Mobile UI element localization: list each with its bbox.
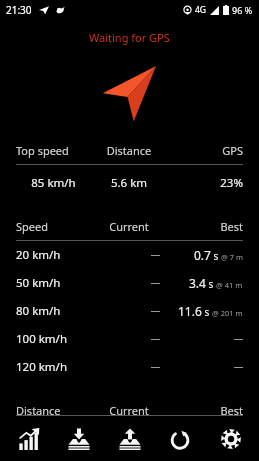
staticText: Top speed	[16, 143, 91, 158]
button[interactable]: Import	[57, 417, 101, 461]
staticText: GPS	[167, 143, 243, 158]
staticText: Current	[91, 219, 167, 234]
staticText: @ 41 m	[214, 280, 243, 290]
staticText: s	[202, 305, 210, 319]
staticText: Best	[167, 403, 243, 418]
staticText: 85 km/h	[16, 175, 91, 191]
staticText: 5.6 km	[91, 175, 167, 191]
staticText: @ 7 m	[219, 252, 243, 262]
staticText: 4G	[195, 4, 207, 16]
staticText: 21:30	[6, 3, 32, 17]
staticText: 100 km/h	[16, 331, 88, 347]
staticText: Distance	[91, 143, 167, 158]
button[interactable]: Statistics	[7, 417, 51, 461]
staticText: Distance	[16, 403, 91, 418]
staticText: s	[206, 277, 214, 291]
staticText: Current	[91, 403, 167, 418]
staticText: 50 km/h	[16, 275, 88, 291]
staticText: Best	[167, 219, 243, 234]
staticText: Waiting for GPS	[89, 30, 170, 45]
button[interactable]: Export	[108, 417, 152, 461]
staticText: 23%	[167, 175, 243, 191]
staticText: 20 km/h	[16, 247, 88, 263]
button[interactable]: Reset	[158, 417, 202, 461]
staticText: 11.6	[178, 303, 202, 319]
staticText: 80 km/h	[16, 303, 88, 319]
staticText: 0.7	[194, 247, 211, 263]
staticText: 3.4	[189, 275, 206, 291]
staticText: 96 %	[232, 4, 253, 16]
button[interactable]: Settings	[209, 417, 253, 461]
staticText: 120 km/h	[16, 359, 88, 375]
staticText: @ 201 m	[210, 308, 243, 318]
staticText: Speed	[16, 219, 91, 234]
staticText: s	[211, 249, 219, 263]
